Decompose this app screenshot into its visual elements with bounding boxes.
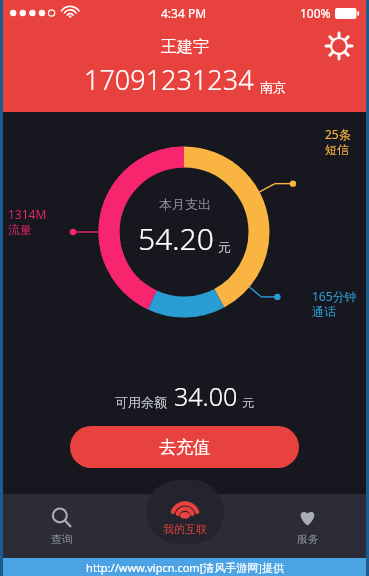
staticText: 165分钟 <box>312 288 357 304</box>
staticText: 去充值 <box>159 437 210 458</box>
staticText: http://www.vipcn.com[清风手游网]提供 <box>86 560 284 575</box>
button[interactable]: 我的互联 <box>146 480 224 544</box>
staticText: 54.20 <box>138 218 214 259</box>
button[interactable]: 服务 <box>246 494 369 558</box>
staticText: 通话 <box>312 304 336 319</box>
staticText: 1314M <box>8 206 47 222</box>
staticText: 34.00 <box>174 379 238 413</box>
staticText: 本月支出 <box>159 196 211 212</box>
staticText: 25条 <box>325 126 351 142</box>
button[interactable]: Settings <box>321 28 357 64</box>
staticText: 我的互联 <box>163 522 207 536</box>
staticText: 元 <box>218 239 231 255</box>
staticText: 元 <box>242 395 254 410</box>
staticText: 王建宇 <box>161 37 209 57</box>
staticText: 流量 <box>8 222 32 237</box>
staticText: 服务 <box>297 532 319 546</box>
button[interactable]: 查询 <box>0 494 123 558</box>
staticText: 短信 <box>325 142 349 157</box>
staticText: 17091231234 <box>84 61 254 98</box>
button[interactable]: 去充值 <box>70 426 299 468</box>
staticText: 查询 <box>51 532 73 546</box>
staticText: 可用余额 <box>115 394 167 410</box>
staticText: 4:34 PM <box>161 5 207 21</box>
staticText: 100% <box>300 5 331 21</box>
staticText: 南京 <box>260 79 286 95</box>
